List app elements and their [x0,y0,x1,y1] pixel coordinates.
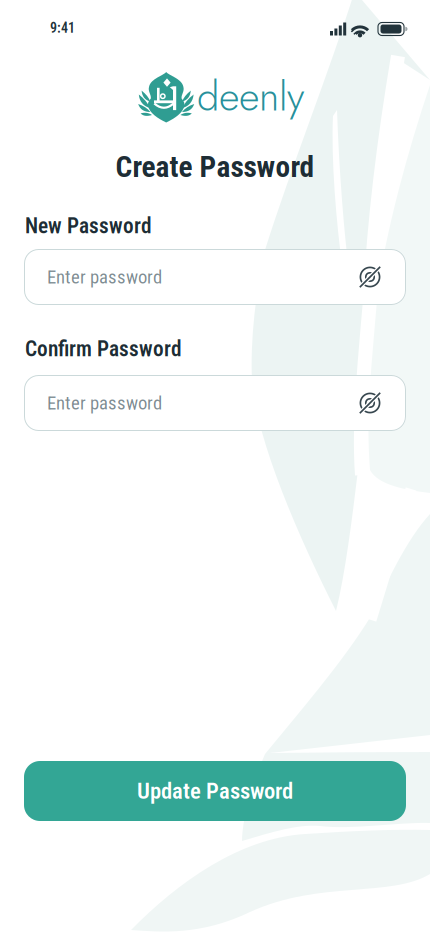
staticText: deenly [197,68,304,125]
staticText: Confirm Password [25,336,182,361]
button[interactable]: Update Password [24,761,406,821]
staticText: Enter password [47,266,162,288]
button[interactable]: Password entry field [24,375,406,431]
staticText: Create Password [115,150,314,184]
staticText: Enter password [47,392,162,414]
button[interactable]: Show password [358,265,382,289]
staticText: Update Password [137,778,293,804]
button[interactable]: Password entry field [24,249,406,305]
staticText: 9:41 [50,20,75,36]
button[interactable]: Show password [358,391,382,415]
staticText: New Password [25,213,152,238]
